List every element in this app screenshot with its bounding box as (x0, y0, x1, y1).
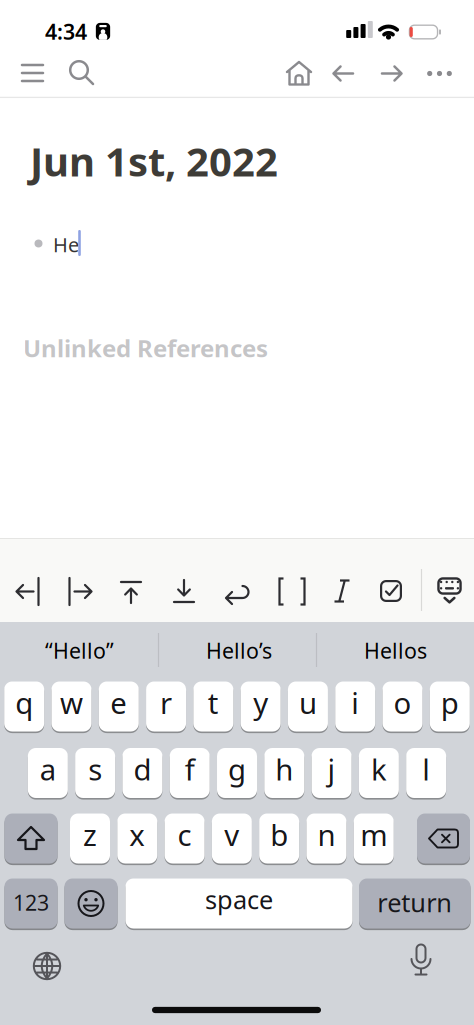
button[interactable]: f (170, 747, 210, 799)
staticText: He (53, 231, 79, 258)
button[interactable] (379, 60, 405, 86)
staticText: space (205, 883, 273, 916)
staticText: Hellos (364, 636, 427, 665)
staticText: d (133, 749, 151, 788)
staticText: 4:34 (45, 17, 87, 46)
button[interactable]: n (306, 812, 346, 864)
button[interactable]: h (264, 747, 304, 799)
button[interactable] (432, 573, 466, 607)
staticText: Unlinked References (23, 332, 268, 364)
button[interactable] (406, 941, 436, 981)
staticText: Hello’s (206, 636, 272, 665)
button[interactable] (422, 61, 456, 85)
button[interactable] (64, 575, 96, 607)
button[interactable]: g (217, 747, 257, 799)
staticText: return (377, 886, 452, 919)
button[interactable] (31, 950, 63, 982)
staticText: w (60, 683, 83, 722)
button[interactable]: v (212, 812, 252, 864)
staticText: t (208, 683, 219, 722)
button[interactable]: t (193, 680, 233, 732)
button[interactable] (4, 812, 57, 864)
button[interactable]: z (70, 812, 110, 864)
staticText: b (270, 815, 288, 854)
button[interactable] (66, 57, 96, 87)
button[interactable]: q (4, 680, 44, 732)
staticText: a (40, 749, 56, 788)
staticText: n (317, 815, 335, 854)
staticText: j (328, 749, 336, 788)
button[interactable]: p (430, 680, 470, 732)
staticText: Jun 1st, 2022 (30, 134, 278, 187)
button[interactable] (168, 575, 200, 607)
button[interactable]: k (359, 747, 399, 799)
staticText: m (360, 815, 387, 854)
staticText: e (110, 683, 127, 722)
button[interactable]: space (125, 877, 352, 929)
button[interactable]: a (28, 747, 68, 799)
staticText: p (441, 683, 459, 722)
staticText: s (88, 749, 102, 788)
button[interactable]: x (117, 812, 157, 864)
staticText: r (160, 683, 172, 722)
button[interactable]: Hellos (317, 622, 474, 679)
button[interactable] (417, 812, 470, 864)
button[interactable]: return (359, 877, 470, 929)
staticText: x (129, 815, 145, 854)
button[interactable] (12, 575, 44, 607)
staticText: q (15, 683, 33, 722)
button[interactable]: e (99, 680, 139, 732)
staticText: y (253, 683, 268, 722)
button[interactable]: w (51, 680, 91, 732)
button[interactable]: u (288, 680, 328, 732)
staticText: v (224, 815, 239, 854)
button[interactable] (221, 575, 253, 607)
button[interactable] (18, 59, 46, 87)
button[interactable]: l (406, 747, 446, 799)
button[interactable]: “Hello” (1, 622, 158, 679)
button[interactable]: s (75, 747, 115, 799)
button[interactable]: c (165, 812, 205, 864)
button[interactable] (276, 575, 308, 607)
staticText: u (299, 683, 317, 722)
button[interactable]: y (241, 680, 281, 732)
button[interactable] (330, 60, 356, 86)
button[interactable] (115, 575, 147, 607)
button[interactable]: j (312, 747, 352, 799)
button[interactable]: r (146, 680, 186, 732)
staticText: g (228, 749, 246, 788)
button[interactable] (284, 58, 314, 88)
button[interactable]: 123 (4, 877, 57, 929)
staticText: i (351, 683, 359, 722)
button[interactable]: i (335, 680, 375, 732)
button[interactable]: o (382, 680, 422, 732)
staticText: l (422, 749, 430, 788)
button[interactable]: b (259, 812, 299, 864)
staticText: f (185, 749, 195, 788)
staticText: z (83, 815, 97, 854)
staticText: h (275, 749, 293, 788)
staticText: 123 (13, 888, 49, 917)
button[interactable]: d (122, 747, 162, 799)
button[interactable] (376, 576, 406, 606)
staticText: “Hello” (45, 636, 114, 665)
button[interactable]: Hello’s (160, 622, 317, 679)
button[interactable] (326, 575, 358, 607)
button[interactable]: m (354, 812, 394, 864)
button[interactable] (64, 877, 117, 929)
staticText: c (178, 815, 192, 854)
staticText: o (393, 683, 411, 722)
staticText: k (371, 749, 387, 788)
